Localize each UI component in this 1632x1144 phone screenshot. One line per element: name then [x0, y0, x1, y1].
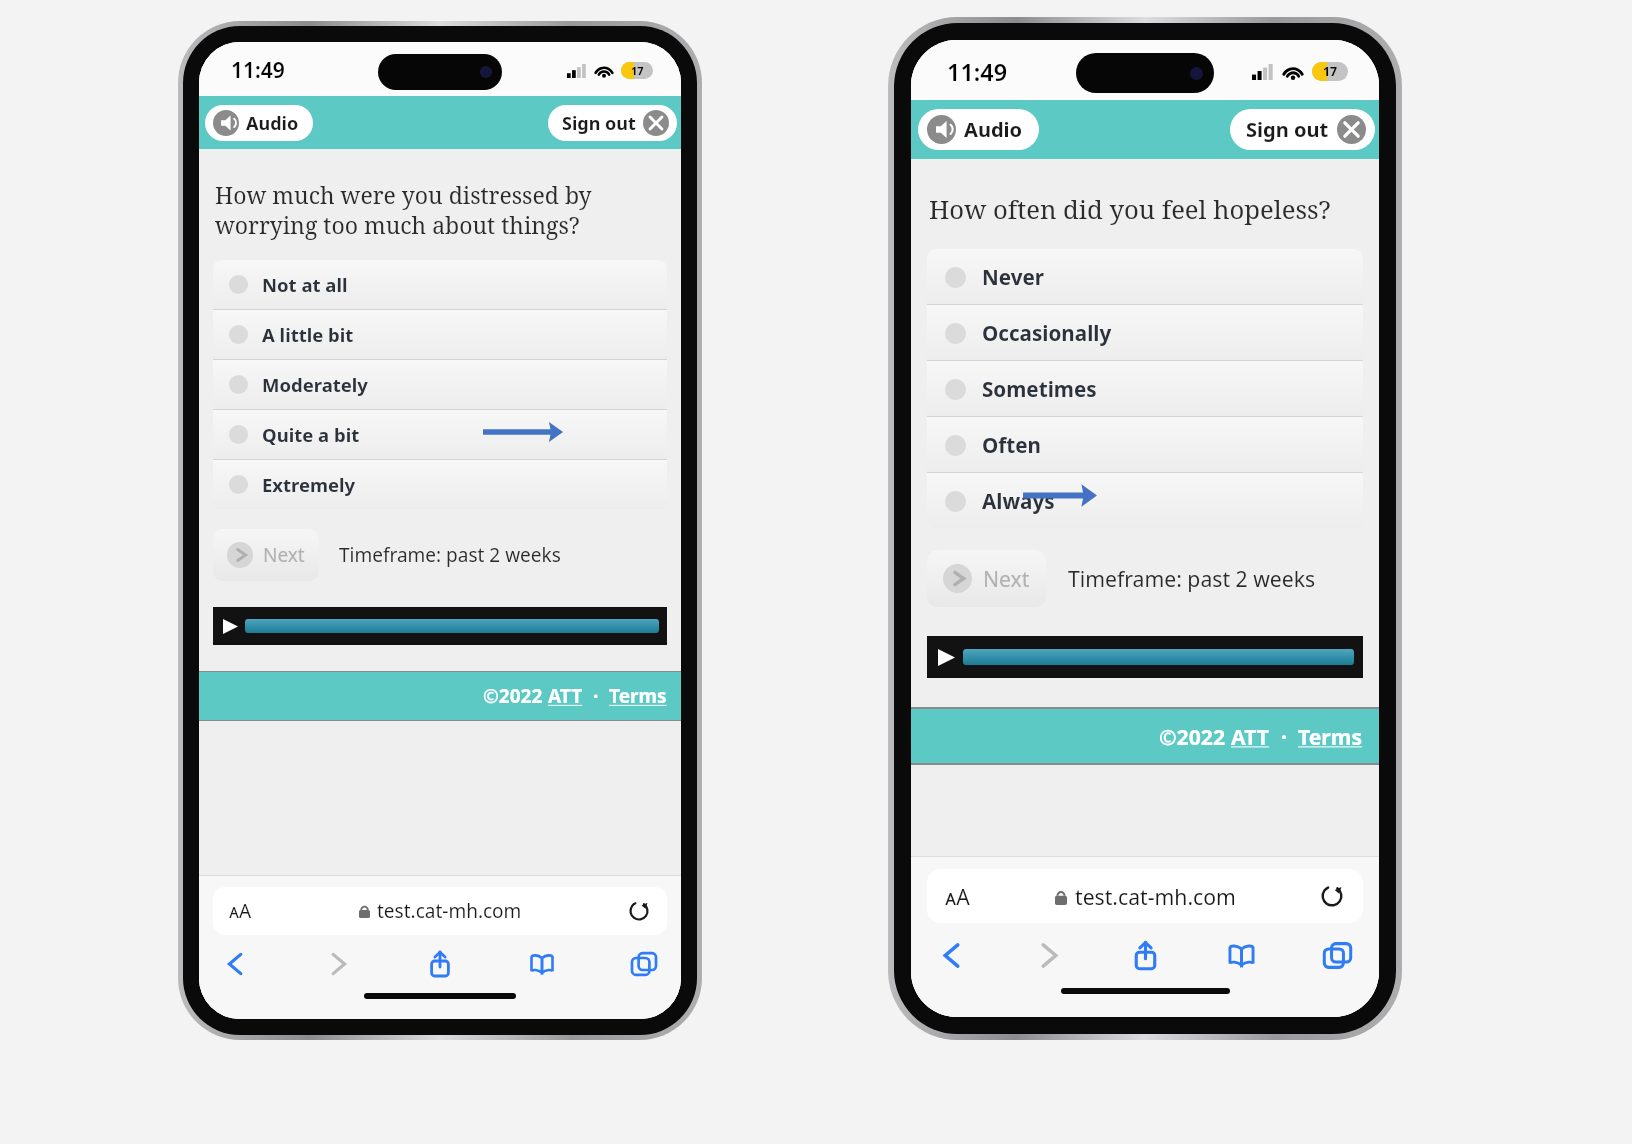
staticText: test.cat-mh.com: [1075, 882, 1236, 911]
staticText: test.cat-mh.com: [377, 898, 522, 924]
button[interactable]: ᴀA: [213, 887, 667, 935]
other: Sign out: [1337, 115, 1366, 144]
other: Audio: [213, 110, 239, 136]
other: Reload: [1321, 885, 1343, 907]
staticText: How much were you distressed by worrying…: [215, 179, 665, 240]
button[interactable]: Audio: [918, 109, 1039, 150]
staticText: Audio: [964, 116, 1023, 143]
staticText: 11:49: [947, 56, 1008, 88]
staticText: 11:49: [231, 56, 285, 85]
button[interactable]: Quite a bit: [213, 410, 667, 459]
button[interactable]: Always: [927, 473, 1363, 528]
button[interactable]: Forward: [323, 949, 353, 979]
button[interactable]: Occasionally: [927, 305, 1363, 360]
staticText: Timeframe: past 2 weeks: [339, 542, 561, 568]
staticText: How often did you feel hopeless?: [929, 192, 1331, 227]
button[interactable]: Tabs: [629, 949, 659, 979]
staticText: 17: [631, 63, 644, 78]
staticText: Sign out: [1246, 116, 1329, 143]
staticText: Audio: [246, 111, 299, 136]
button[interactable]: Back: [936, 939, 969, 972]
button[interactable]: Moderately: [213, 360, 667, 409]
staticText: Timeframe: past 2 weeks: [1068, 564, 1316, 593]
staticText: Not at all: [262, 272, 348, 297]
other: Reload: [629, 901, 649, 921]
button[interactable]: Bookmarks: [527, 949, 557, 979]
staticText: Often: [982, 431, 1041, 459]
button[interactable]: Share: [1129, 939, 1162, 972]
button[interactable]: Tabs: [1321, 939, 1354, 972]
button[interactable]: Next: [927, 550, 1046, 607]
button[interactable]: Often: [927, 417, 1363, 472]
staticText: ᴀA: [229, 898, 252, 924]
button[interactable]: ᴀA: [927, 869, 1363, 923]
button[interactable]: Play audio: [927, 636, 1363, 678]
button[interactable]: Sign out: [1230, 109, 1375, 150]
button[interactable]: ATT: [1231, 722, 1270, 751]
button[interactable]: Bookmarks: [1225, 939, 1258, 972]
button[interactable]: Extremely: [213, 460, 667, 509]
button[interactable]: Next: [213, 529, 319, 581]
staticText: Occasionally: [982, 319, 1112, 347]
staticText: Next: [983, 564, 1030, 593]
button[interactable]: Forward: [1032, 939, 1065, 972]
staticText: ©2022: [1159, 722, 1231, 751]
staticText: Next: [263, 542, 305, 568]
button[interactable]: Back: [221, 949, 251, 979]
staticText: ·: [1270, 722, 1298, 751]
button[interactable]: Play audio: [213, 607, 667, 645]
staticText: ©2022: [483, 683, 548, 709]
staticText: Sometimes: [982, 375, 1097, 403]
button[interactable]: Sometimes: [927, 361, 1363, 416]
staticText: Always: [982, 487, 1055, 515]
button[interactable]: Terms: [1298, 722, 1363, 751]
button[interactable]: A little bit: [213, 310, 667, 359]
button[interactable]: Share: [425, 949, 455, 979]
staticText: A little bit: [262, 322, 354, 347]
staticText: 17: [1323, 63, 1338, 80]
button[interactable]: Terms: [609, 683, 667, 709]
staticText: Moderately: [262, 372, 368, 397]
staticText: ·: [583, 683, 609, 709]
other: Audio: [927, 115, 956, 144]
button[interactable]: Not at all: [213, 260, 667, 309]
button[interactable]: Sign out: [548, 105, 677, 141]
staticText: Extremely: [262, 472, 356, 497]
button[interactable]: Never: [927, 249, 1363, 304]
staticText: Sign out: [562, 111, 636, 136]
other: Sign out: [643, 110, 669, 136]
staticText: ᴀA: [945, 882, 970, 911]
button[interactable]: ATT: [548, 683, 583, 709]
button[interactable]: Audio: [205, 105, 313, 141]
staticText: Never: [982, 263, 1044, 291]
staticText: Quite a bit: [262, 422, 360, 447]
